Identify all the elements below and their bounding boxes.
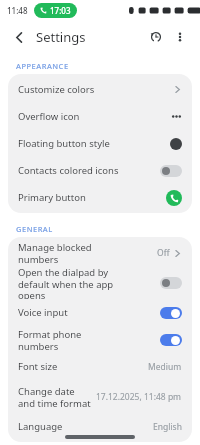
button[interactable]: Voice input <box>8 299 192 326</box>
button[interactable]: Contacts colored icons <box>8 157 192 184</box>
staticText: Overflow icon <box>18 110 80 123</box>
staticText: Customize colors <box>18 83 95 96</box>
staticText: Open the dialpad by default when the app… <box>18 266 123 299</box>
staticText: Primary button <box>18 191 86 204</box>
staticText: Off <box>157 247 170 259</box>
button[interactable]: Language <box>8 413 192 440</box>
button[interactable]: Switch off <box>160 277 182 289</box>
staticText: APPEARANCE <box>16 61 69 71</box>
button[interactable]: Change date and time format <box>8 380 192 413</box>
staticText: 17:03 <box>50 5 71 16</box>
button[interactable]: Ongoing call 17:03 <box>34 3 77 18</box>
button[interactable]: Font size <box>8 353 192 380</box>
button[interactable]: Switch on <box>160 307 182 319</box>
button[interactable]: Open the dialpad by default when the app… <box>8 266 192 299</box>
staticText: Medium <box>148 361 182 373</box>
staticText: Floating button style <box>18 137 110 150</box>
staticText: Change date and time format <box>18 385 92 409</box>
button[interactable]: Back <box>8 26 30 48</box>
staticText: GENERAL <box>16 224 53 234</box>
staticText: Settings <box>36 28 86 46</box>
staticText: 11:48 <box>7 5 28 16</box>
staticText: English <box>153 421 182 433</box>
button[interactable]: More options <box>168 25 192 49</box>
button[interactable]: Customize colors <box>8 76 192 103</box>
button[interactable]: Call history <box>144 25 168 49</box>
staticText: 17.12.2025, 11:48 pm <box>96 391 182 403</box>
staticText: Font size <box>18 360 58 373</box>
staticText: Manage blocked numbers <box>18 241 123 265</box>
button[interactable]: Switch off <box>160 165 182 177</box>
button[interactable]: Primary button <box>8 184 192 211</box>
button[interactable]: Overflow icon <box>8 103 192 130</box>
button[interactable]: Switch on <box>160 334 182 346</box>
staticText: Format phone numbers <box>18 328 123 352</box>
staticText: Voice input <box>18 306 68 319</box>
button[interactable]: Manage blocked numbers <box>8 239 192 266</box>
staticText: Contacts colored icons <box>18 164 119 177</box>
button[interactable]: Floating button style <box>8 130 192 157</box>
button[interactable]: Format phone numbers <box>8 326 192 353</box>
staticText: Language <box>18 420 63 433</box>
